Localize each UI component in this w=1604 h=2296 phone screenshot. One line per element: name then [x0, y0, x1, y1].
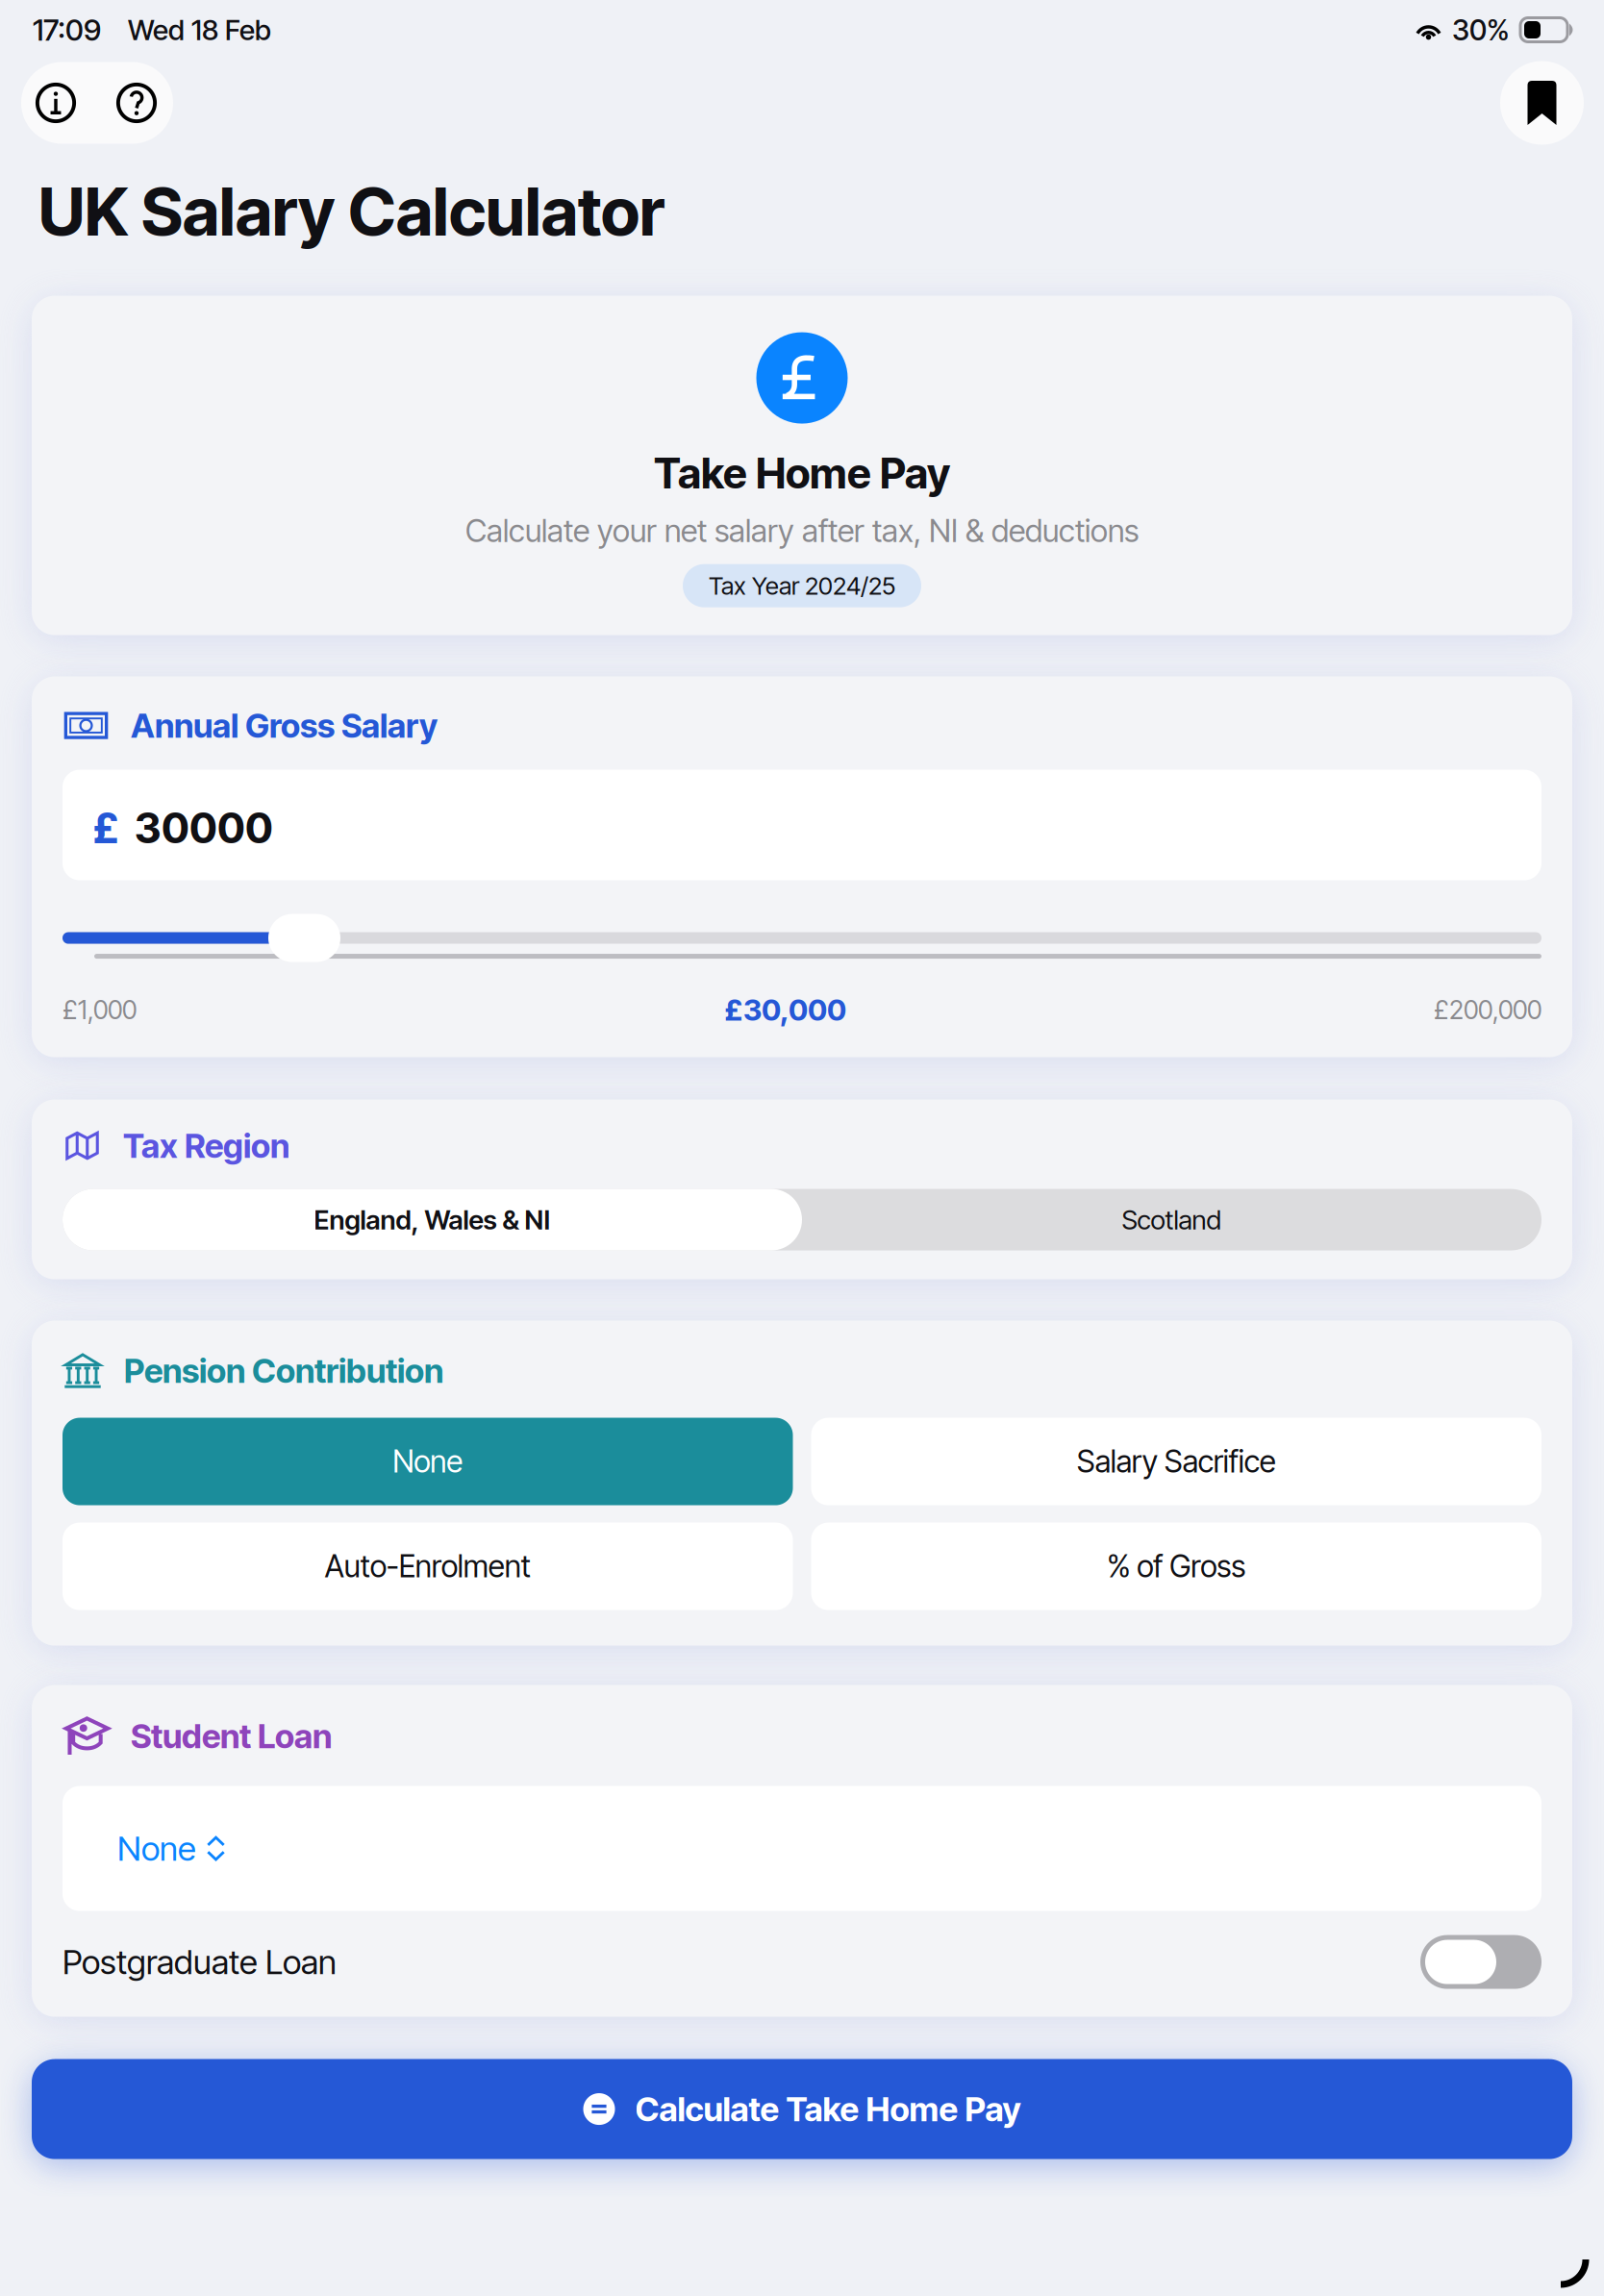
staticText: Calculate your net salary after tax, NI …: [465, 512, 1139, 550]
staticText: Wed 18 Feb: [128, 13, 271, 47]
button[interactable]: Information: [21, 62, 96, 144]
staticText: UK Salary Calculator: [38, 171, 664, 252]
staticText: Calculate Take Home Pay: [635, 2089, 1021, 2129]
staticText: Take Home Pay: [654, 448, 950, 499]
button[interactable]: Salary Sacrifice: [811, 1418, 1541, 1505]
staticText: Auto-Enrolment: [325, 1548, 531, 1585]
staticText: England, Wales & NI: [314, 1204, 551, 1236]
button[interactable]: None: [63, 1418, 793, 1505]
staticText: Salary Sacrifice: [1077, 1443, 1276, 1480]
staticText: £: [92, 802, 119, 853]
staticText: Postgraduate Loan: [63, 1942, 337, 1982]
staticText: Tax Region: [123, 1126, 289, 1166]
staticText: Scotland: [1122, 1204, 1222, 1236]
staticText: Student Loan: [131, 1716, 332, 1756]
button[interactable]: Help: [96, 62, 173, 144]
staticText: 30%: [1452, 12, 1510, 47]
staticText: £30,000: [724, 992, 846, 1028]
button[interactable]: Scotland: [802, 1189, 1541, 1250]
button[interactable]: England, Wales & NI: [63, 1189, 802, 1250]
button[interactable]: Calculate Take Home Pay: [32, 2059, 1572, 2159]
staticText: Annual Gross Salary: [131, 705, 438, 746]
staticText: % of Gross: [1107, 1548, 1246, 1585]
staticText: 17:09: [33, 12, 101, 48]
staticText: None: [117, 1828, 196, 1869]
button[interactable]: None: [63, 1786, 1541, 1911]
staticText: Pension Contribution: [124, 1351, 443, 1391]
staticText: £1,000: [63, 994, 137, 1025]
staticText: Tax Year 2024/25: [709, 571, 895, 601]
staticText: £200,000: [1434, 994, 1541, 1025]
staticText: None: [393, 1443, 463, 1480]
button[interactable]: Postgraduate Loan: [63, 1935, 1541, 1989]
staticText: 30000: [135, 802, 273, 853]
button[interactable]: Bookmark: [1500, 61, 1584, 145]
button[interactable]: Auto-Enrolment: [63, 1523, 793, 1610]
button[interactable]: % of Gross: [811, 1523, 1541, 1610]
